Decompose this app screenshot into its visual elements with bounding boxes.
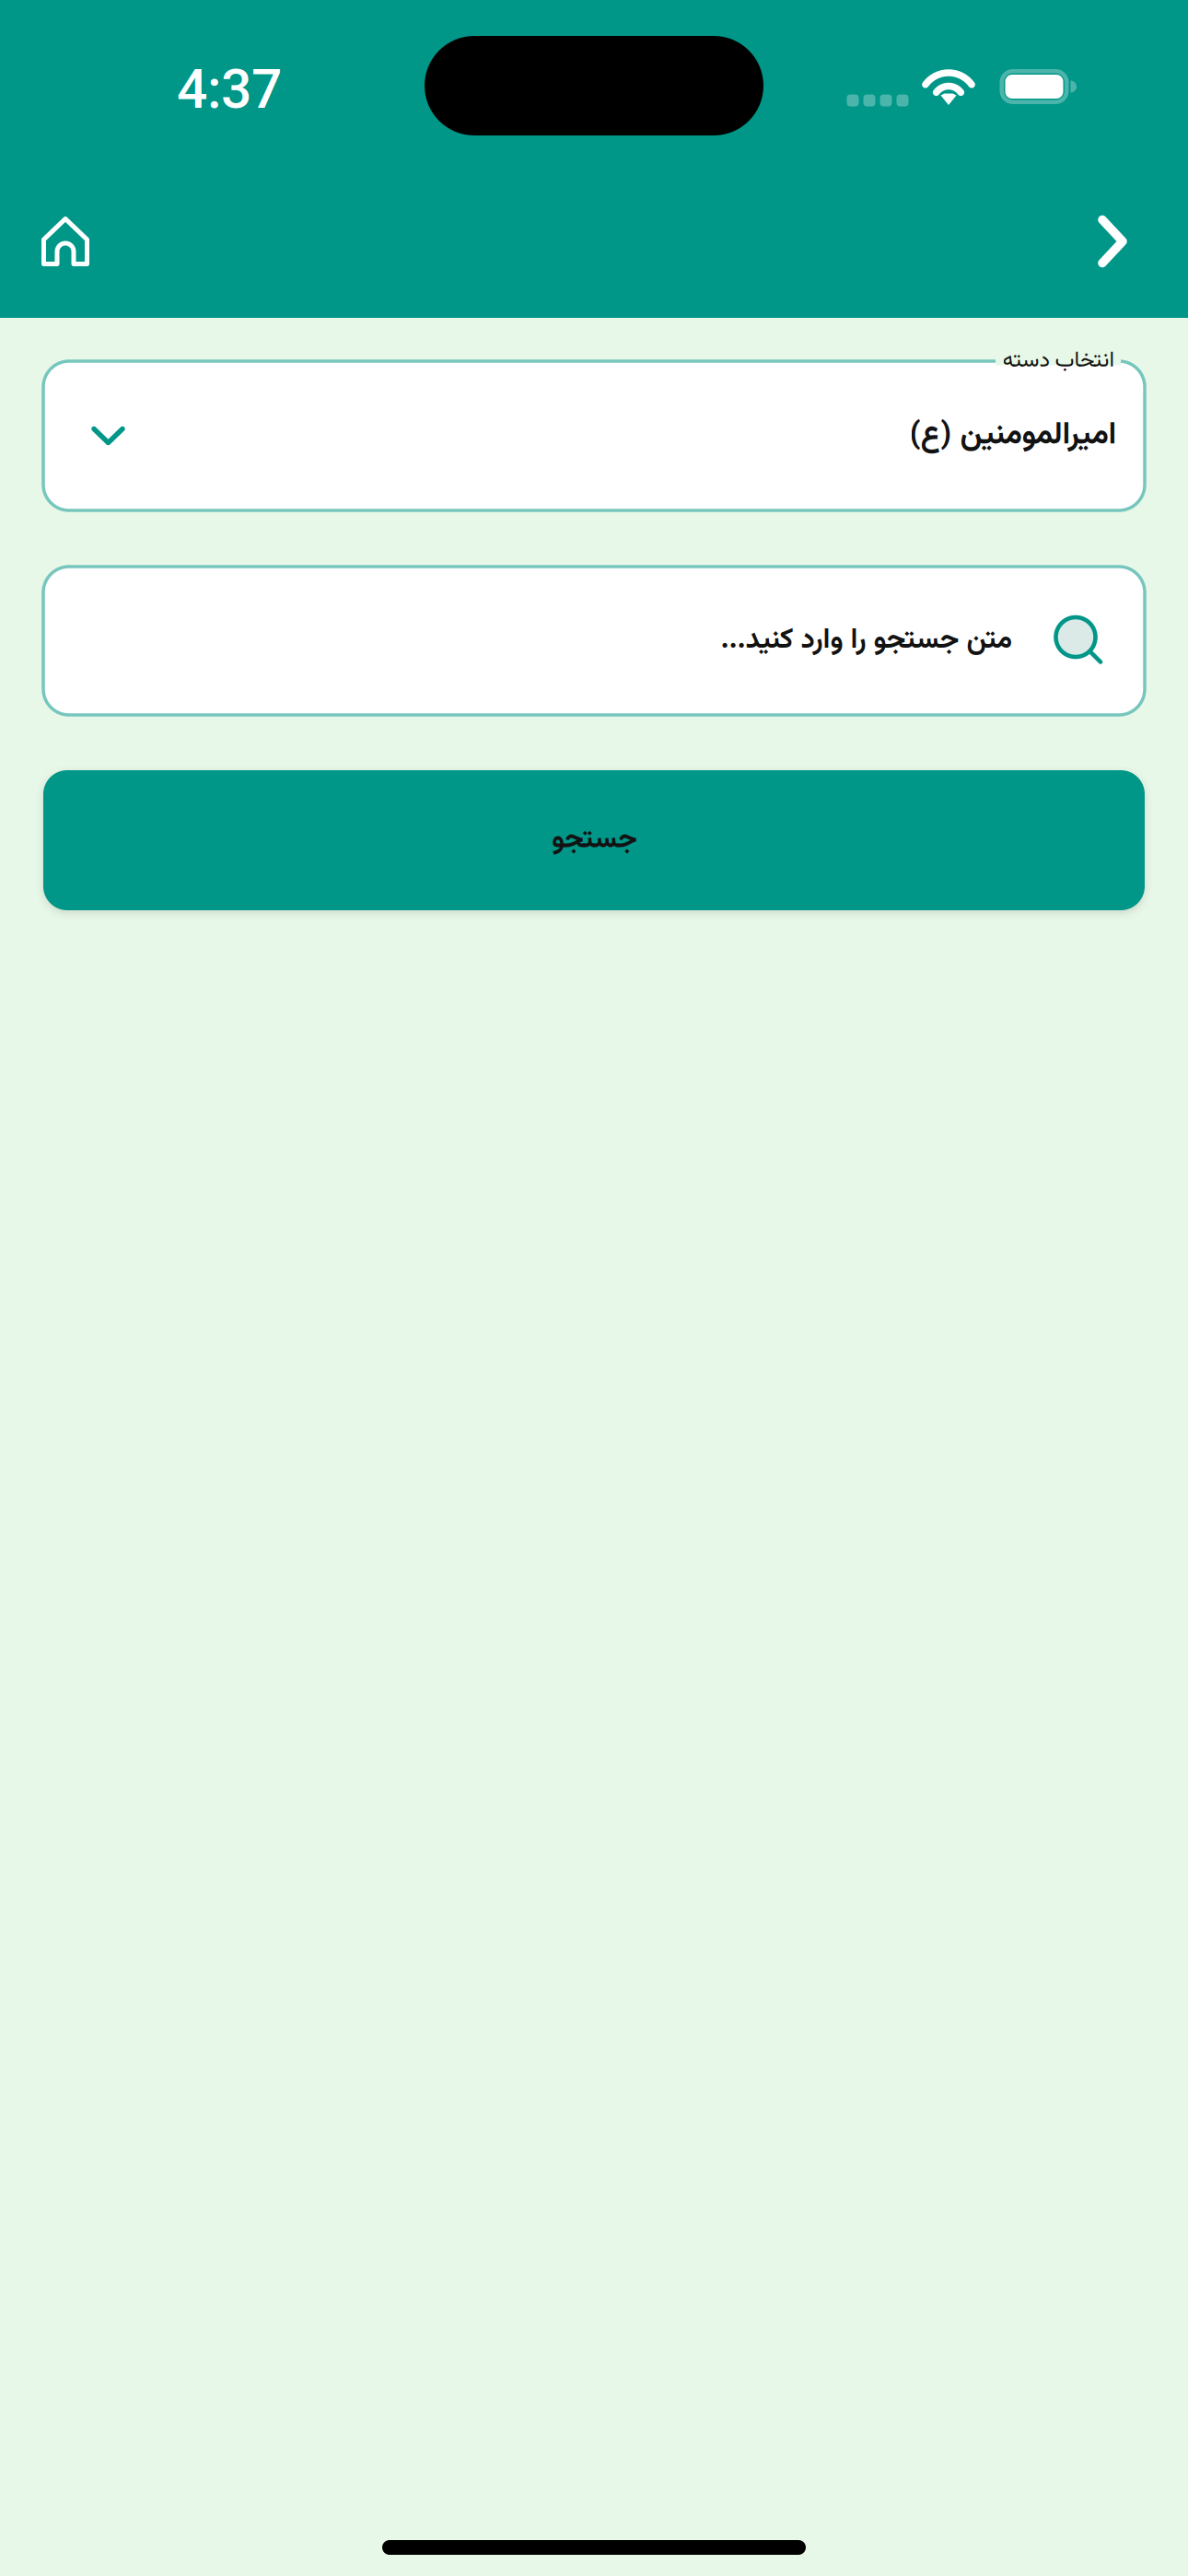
staticText: 4:37: [177, 58, 282, 121]
staticText: جستجو: [551, 818, 637, 862]
staticText: امیرالمومنین (ع): [909, 411, 1116, 460]
button[interactable]: متن جستجو را وارد کنید...: [43, 567, 1145, 715]
button[interactable]: Back: [1062, 191, 1163, 292]
button[interactable]: جستجو: [43, 770, 1145, 910]
button[interactable]: Home: [15, 191, 116, 292]
staticText: متن جستجو را وارد کنید...: [720, 619, 1012, 663]
staticText: انتخاب دسته: [1002, 344, 1114, 378]
button[interactable]: امیرالمومنین (ع): [43, 361, 1145, 510]
